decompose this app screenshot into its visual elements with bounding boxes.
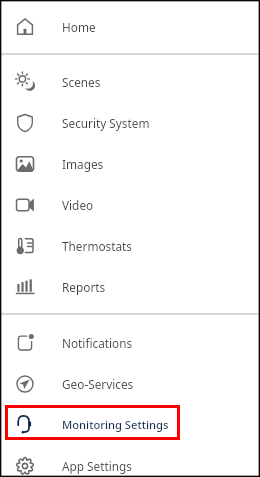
button[interactable]: Notifications bbox=[0, 322, 260, 363]
staticText: Security System bbox=[62, 115, 150, 131]
button[interactable]: Home bbox=[0, 6, 260, 47]
button[interactable]: Scenes bbox=[0, 61, 260, 102]
staticText: Video bbox=[62, 197, 94, 213]
staticText: Scenes bbox=[62, 74, 101, 90]
button[interactable]: Images bbox=[0, 143, 260, 184]
staticText: Geo-Services bbox=[62, 376, 134, 392]
button[interactable]: Monitoring Settings bbox=[0, 404, 260, 445]
button[interactable]: Reports bbox=[0, 266, 260, 307]
staticText: Notifications bbox=[62, 335, 133, 351]
staticText: Thermostats bbox=[62, 238, 132, 254]
button[interactable]: Security System bbox=[0, 102, 260, 143]
staticText: Monitoring Settings bbox=[62, 417, 169, 432]
staticText: Reports bbox=[62, 279, 106, 295]
staticText: Home bbox=[62, 19, 96, 35]
staticText: Images bbox=[62, 156, 104, 172]
button[interactable]: Thermostats bbox=[0, 225, 260, 266]
staticText: App Settings bbox=[62, 458, 133, 474]
button[interactable]: Geo-Services bbox=[0, 363, 260, 404]
button[interactable]: App Settings bbox=[0, 445, 260, 477]
button[interactable]: Video bbox=[0, 184, 260, 225]
